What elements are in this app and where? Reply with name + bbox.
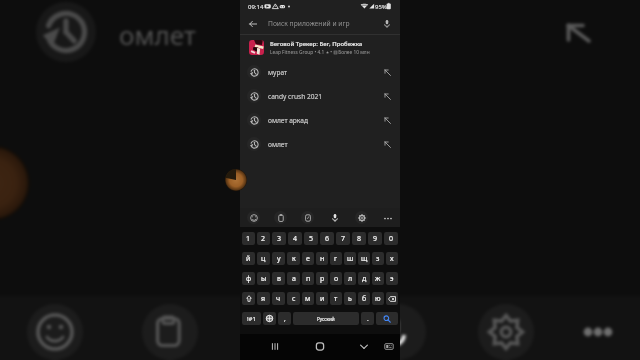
button[interactable]: з bbox=[372, 252, 384, 265]
button[interactable]: Insert suggestion bbox=[381, 90, 393, 102]
button[interactable]: щ bbox=[358, 252, 370, 265]
button[interactable]: м bbox=[302, 292, 314, 305]
staticText: х bbox=[390, 254, 394, 264]
staticText: 0 bbox=[389, 234, 394, 244]
staticText: б bbox=[362, 294, 367, 304]
staticText: 1 bbox=[246, 234, 251, 244]
button[interactable]: Backspace bbox=[386, 292, 398, 305]
button[interactable]: Shift bbox=[242, 292, 255, 305]
button[interactable]: Change language bbox=[263, 312, 276, 325]
button[interactable]: Русский bbox=[293, 312, 359, 325]
button[interactable]: ю bbox=[372, 292, 384, 305]
button[interactable]: Insert suggestion bbox=[381, 114, 393, 126]
button[interactable]: ч bbox=[272, 292, 285, 305]
staticText: ю bbox=[375, 294, 381, 304]
button[interactable]: 2 bbox=[257, 232, 270, 245]
button[interactable]: э bbox=[386, 272, 398, 285]
staticText: у bbox=[277, 254, 281, 264]
staticText: омлет bbox=[268, 140, 288, 149]
staticText: candy crush 2021 bbox=[268, 92, 323, 101]
button[interactable]: More options bbox=[382, 212, 394, 224]
button[interactable]: г bbox=[330, 252, 342, 265]
button[interactable]: с bbox=[287, 292, 300, 305]
button[interactable]: к bbox=[287, 252, 300, 265]
staticText: ы bbox=[261, 274, 267, 284]
button[interactable]: ж bbox=[372, 272, 384, 285]
button[interactable]: Settings bbox=[355, 211, 368, 224]
button[interactable]: Беговой Трекер: Бег, Пробежка bbox=[240, 35, 400, 60]
button[interactable]: ш bbox=[344, 252, 356, 265]
button[interactable]: н bbox=[316, 252, 328, 265]
staticText: р bbox=[320, 274, 325, 284]
staticText: Беговой Трекер: Бег, Пробежка bbox=[270, 40, 363, 48]
button[interactable]: 9 bbox=[368, 232, 382, 245]
button[interactable]: 8 bbox=[352, 232, 366, 245]
button[interactable]: л bbox=[344, 272, 356, 285]
button[interactable]: у bbox=[272, 252, 285, 265]
button[interactable]: Switch keyboard bbox=[382, 340, 396, 354]
button[interactable]: 3 bbox=[272, 232, 286, 245]
button[interactable]: candy crush 2021 bbox=[240, 84, 400, 108]
button[interactable]: . bbox=[361, 312, 374, 325]
button[interactable]: ь bbox=[344, 292, 356, 305]
button[interactable]: 5 bbox=[304, 232, 318, 245]
button[interactable]: 7 bbox=[336, 232, 350, 245]
staticText: 6 bbox=[325, 234, 330, 244]
staticText: н bbox=[320, 254, 325, 264]
button[interactable]: й bbox=[242, 252, 255, 265]
staticText: 95% bbox=[375, 3, 387, 11]
button[interactable]: и bbox=[316, 292, 328, 305]
staticText: л bbox=[348, 274, 353, 284]
staticText: в bbox=[277, 274, 281, 284]
button[interactable]: Hide keyboard bbox=[357, 339, 373, 355]
button[interactable]: омлет bbox=[240, 132, 400, 156]
staticText: м bbox=[305, 294, 311, 304]
button[interactable]: а bbox=[287, 272, 300, 285]
button[interactable]: б bbox=[358, 292, 370, 305]
button[interactable]: Back bbox=[245, 16, 261, 32]
staticText: г bbox=[334, 254, 338, 264]
button[interactable]: 4 bbox=[288, 232, 302, 245]
staticText: д bbox=[362, 274, 367, 284]
button[interactable]: ы bbox=[257, 272, 270, 285]
button[interactable]: т bbox=[330, 292, 342, 305]
button[interactable]: Clipboard bbox=[274, 211, 287, 224]
button[interactable]: Insert suggestion bbox=[381, 66, 393, 78]
staticText: 5 bbox=[309, 234, 314, 244]
staticText: 8 bbox=[357, 234, 362, 244]
button[interactable]: ц bbox=[257, 252, 270, 265]
button[interactable]: я bbox=[257, 292, 270, 305]
button[interactable]: Emoji bbox=[247, 211, 260, 224]
button[interactable]: 0 bbox=[384, 232, 398, 245]
staticText: я bbox=[261, 294, 266, 304]
button[interactable]: мурат bbox=[240, 60, 400, 84]
staticText: 3 bbox=[277, 234, 282, 244]
button[interactable]: , bbox=[278, 312, 291, 325]
button[interactable]: д bbox=[358, 272, 370, 285]
button[interactable]: Voice input bbox=[328, 211, 341, 224]
button[interactable]: о bbox=[330, 272, 342, 285]
button[interactable]: !#1 bbox=[242, 312, 261, 325]
button[interactable]: Recent apps bbox=[267, 339, 283, 355]
staticText: щ bbox=[361, 254, 368, 264]
staticText: . bbox=[367, 314, 369, 323]
button[interactable]: е bbox=[302, 252, 314, 265]
staticText: , bbox=[284, 314, 286, 323]
button[interactable]: Voice search bbox=[379, 16, 395, 32]
button[interactable]: Home bbox=[312, 339, 328, 355]
staticText: 9 bbox=[373, 234, 378, 244]
button[interactable]: ф bbox=[242, 272, 255, 285]
button[interactable]: п bbox=[302, 272, 314, 285]
button[interactable]: омлет аркад bbox=[240, 108, 400, 132]
button[interactable]: в bbox=[272, 272, 285, 285]
button[interactable]: Stickers bbox=[301, 211, 314, 224]
button[interactable]: Search bbox=[376, 312, 398, 325]
button[interactable]: Insert suggestion bbox=[381, 138, 393, 150]
button[interactable]: 1 bbox=[242, 232, 255, 245]
button[interactable]: 6 bbox=[320, 232, 334, 245]
staticText: ш bbox=[347, 254, 354, 264]
staticText: омлет bbox=[119, 17, 196, 52]
button[interactable]: р bbox=[316, 272, 328, 285]
staticText: с bbox=[292, 294, 296, 304]
button[interactable]: х bbox=[386, 252, 398, 265]
